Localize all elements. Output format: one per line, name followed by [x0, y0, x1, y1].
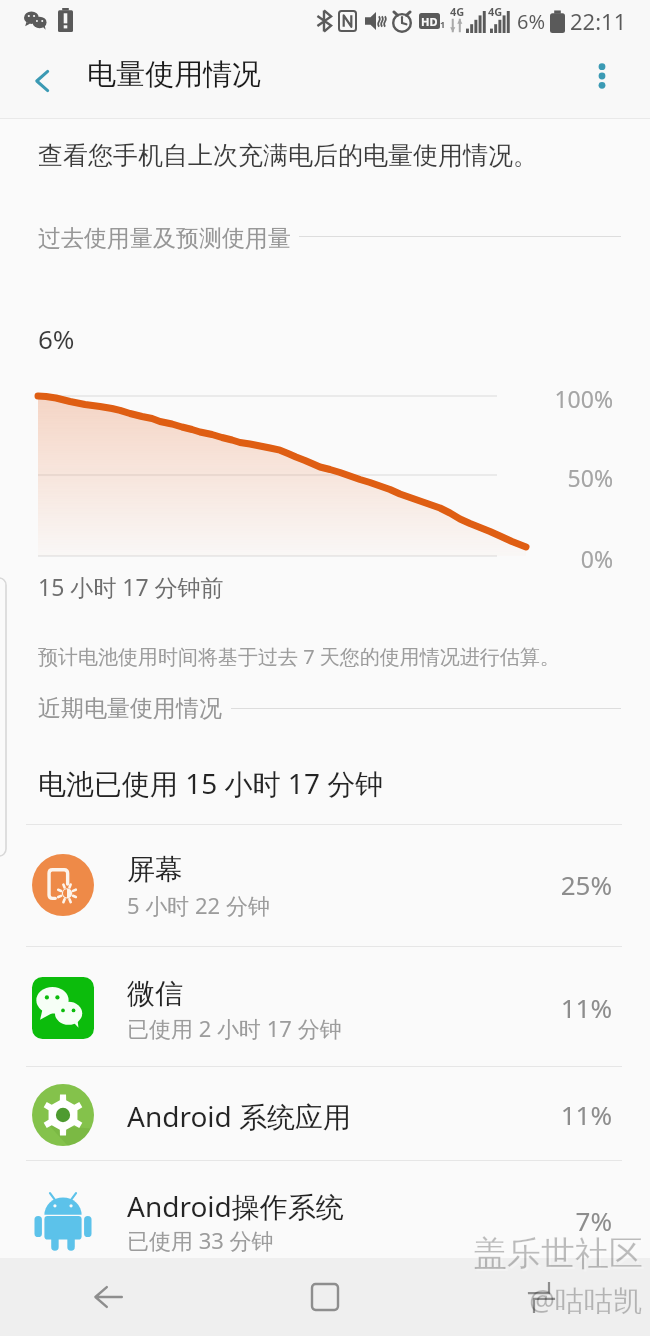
button[interactable]: Recents	[433, 1258, 650, 1336]
staticText: 盖乐世社区	[473, 1232, 643, 1275]
staticText: 11%	[462, 990, 612, 1025]
staticText: 已使用 33 分钟	[127, 1225, 274, 1255]
staticText: 15 小时 17 分钟前	[38, 571, 224, 602]
staticText: 查看您手机自上次充满电后的电量使用情况。	[38, 140, 538, 171]
staticText: 近期电量使用情况	[38, 694, 222, 723]
staticText: Android 系统应用	[127, 1097, 352, 1135]
staticText: 6%	[38, 321, 75, 356]
staticText: 100%	[513, 383, 613, 414]
staticText: 屏幕	[127, 852, 183, 887]
staticText: 50%	[513, 462, 613, 493]
staticText: 25%	[462, 867, 612, 902]
button[interactable]: 屏幕	[0, 824, 650, 946]
staticText: @咕咕凯	[529, 1280, 643, 1320]
button[interactable]: Home	[216, 1258, 433, 1336]
staticText: 6%	[517, 8, 546, 35]
staticText: 11%	[462, 1097, 612, 1132]
staticText: 过去使用量及预测使用量	[38, 224, 291, 253]
staticText: 7%	[462, 1203, 612, 1238]
staticText: 5 小时 22 分钟	[127, 890, 270, 920]
staticText: 1	[440, 18, 446, 30]
staticText: 4G	[450, 4, 465, 19]
button[interactable]: Android 系统应用	[0, 1066, 650, 1160]
button[interactable]: Back	[0, 1258, 216, 1336]
staticText: Android操作系统	[127, 1187, 344, 1225]
staticText: 22:11	[570, 6, 627, 36]
staticText: 微信	[127, 976, 183, 1011]
button[interactable]: 微信	[0, 946, 650, 1066]
button[interactable]: More options	[582, 56, 622, 96]
staticText: 已使用 2 小时 17 分钟	[127, 1013, 342, 1043]
button[interactable]: Back	[24, 62, 62, 100]
staticText: 0%	[513, 543, 613, 574]
staticText: HD	[421, 14, 438, 29]
staticText: 预计电池使用时间将基于过去 7 天您的使用情况进行估算。	[38, 643, 560, 670]
staticText: 电池已使用 15 小时 17 分钟	[38, 764, 384, 802]
staticText: 盖乐世社区	[475, 1234, 645, 1277]
staticText: 4G	[488, 4, 503, 19]
button[interactable]: Android操作系统	[0, 1160, 650, 1262]
staticText: 电量使用情况	[87, 56, 261, 93]
